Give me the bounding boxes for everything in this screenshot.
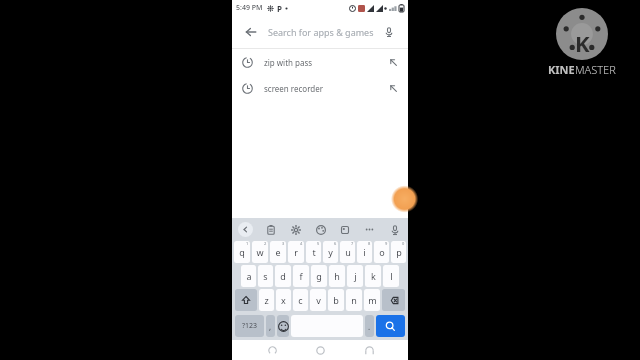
- staticText: P: [277, 3, 282, 14]
- staticText: Search for apps & games: [268, 26, 374, 38]
- button[interactable]: 0: [391, 241, 406, 263]
- button[interactable]: Stickers: [337, 222, 352, 237]
- staticText: t: [312, 246, 316, 258]
- button[interactable]: x: [276, 289, 291, 311]
- button[interactable]: n: [346, 289, 362, 311]
- button[interactable]: b: [328, 289, 344, 311]
- button[interactable]: Voice input: [387, 222, 402, 237]
- button[interactable]: Themes: [313, 222, 328, 237]
- staticText: KINE: [548, 62, 575, 77]
- button[interactable]: l: [383, 265, 399, 287]
- other: Shift: [241, 295, 251, 305]
- staticText: w: [256, 246, 264, 258]
- button[interactable]: screen recorder: [232, 75, 408, 101]
- staticText: 9: [385, 241, 388, 246]
- button[interactable]: d: [275, 265, 291, 287]
- staticText: g: [316, 270, 322, 282]
- staticText: 5:49 PM: [236, 3, 263, 13]
- button[interactable]: Back: [240, 21, 262, 43]
- button[interactable]: 9: [374, 241, 389, 263]
- staticText: 6: [334, 241, 337, 246]
- button[interactable]: Home: [311, 341, 329, 359]
- button[interactable]: j: [347, 265, 363, 287]
- button[interactable]: Search for apps & games: [268, 16, 378, 48]
- staticText: 0: [402, 241, 405, 246]
- staticText: a: [246, 270, 252, 282]
- button[interactable]: 3: [270, 241, 286, 263]
- staticText: u: [345, 246, 351, 258]
- staticText: k: [371, 270, 376, 282]
- staticText: m: [368, 294, 377, 306]
- button[interactable]: zip with pass: [232, 49, 408, 75]
- button[interactable]: Shift: [235, 289, 257, 311]
- button[interactable]: More: [362, 222, 377, 237]
- button[interactable]: Back: [263, 341, 281, 359]
- staticText: n: [351, 294, 357, 306]
- staticText: q: [239, 246, 245, 258]
- staticText: c: [298, 294, 303, 306]
- staticText: ,: [269, 321, 272, 332]
- staticText: .: [368, 321, 371, 332]
- button[interactable]: Emoji: [277, 315, 289, 337]
- button[interactable]: 4: [288, 241, 304, 263]
- button[interactable]: ?123: [235, 315, 264, 337]
- staticText: 3: [282, 241, 285, 246]
- staticText: o: [379, 246, 385, 258]
- staticText: r: [294, 246, 298, 258]
- staticText: v: [316, 294, 321, 306]
- button[interactable]: s: [258, 265, 273, 287]
- button[interactable]: z: [259, 289, 274, 311]
- button[interactable]: Recents: [360, 341, 378, 359]
- button[interactable]: 8: [357, 241, 372, 263]
- staticText: s: [263, 270, 268, 282]
- other: Backspace: [388, 295, 399, 306]
- button[interactable]: m: [364, 289, 380, 311]
- staticText: b: [333, 294, 339, 306]
- button[interactable]: k: [365, 265, 381, 287]
- button[interactable]: .: [365, 315, 374, 337]
- button[interactable]: Previous: [238, 222, 253, 237]
- button[interactable]: 1: [234, 241, 250, 263]
- button[interactable]: v: [310, 289, 326, 311]
- staticText: screen recorder: [264, 83, 324, 94]
- button[interactable]: c: [293, 289, 308, 311]
- button[interactable]: a: [241, 265, 256, 287]
- staticText: zip with pass: [264, 57, 313, 68]
- staticText: 2: [264, 241, 267, 246]
- button[interactable]: h: [329, 265, 345, 287]
- button[interactable]: 2: [252, 241, 268, 263]
- staticText: z: [264, 294, 269, 306]
- staticText: K: [575, 28, 590, 58]
- button[interactable]: Backspace: [382, 289, 405, 311]
- staticText: x: [281, 294, 286, 306]
- staticText: f: [299, 270, 303, 282]
- staticText: 1: [246, 241, 249, 246]
- button[interactable]: 7: [340, 241, 355, 263]
- staticText: h: [334, 270, 340, 282]
- staticText: y: [328, 246, 333, 258]
- button[interactable]: Search: [376, 315, 405, 337]
- button[interactable]: 6: [323, 241, 338, 263]
- staticText: 8: [368, 241, 371, 246]
- button[interactable]: g: [311, 265, 327, 287]
- staticText: MASTER: [575, 62, 616, 77]
- staticText: i: [363, 246, 366, 258]
- staticText: l: [390, 270, 393, 282]
- button[interactable]: Voice search: [378, 21, 400, 43]
- button[interactable]: Settings: [288, 222, 303, 237]
- staticText: p: [396, 246, 402, 258]
- staticText: 5: [317, 241, 320, 246]
- staticText: ?123: [242, 321, 258, 331]
- button[interactable]: Clipboard: [263, 222, 278, 237]
- button[interactable]: f: [293, 265, 309, 287]
- button[interactable]: 5: [306, 241, 321, 263]
- button[interactable]: ,: [266, 315, 275, 337]
- staticText: j: [354, 270, 357, 282]
- staticText: d: [280, 270, 286, 282]
- staticText: e: [275, 246, 281, 258]
- staticText: 7: [351, 241, 354, 246]
- staticText: 4: [300, 241, 303, 246]
